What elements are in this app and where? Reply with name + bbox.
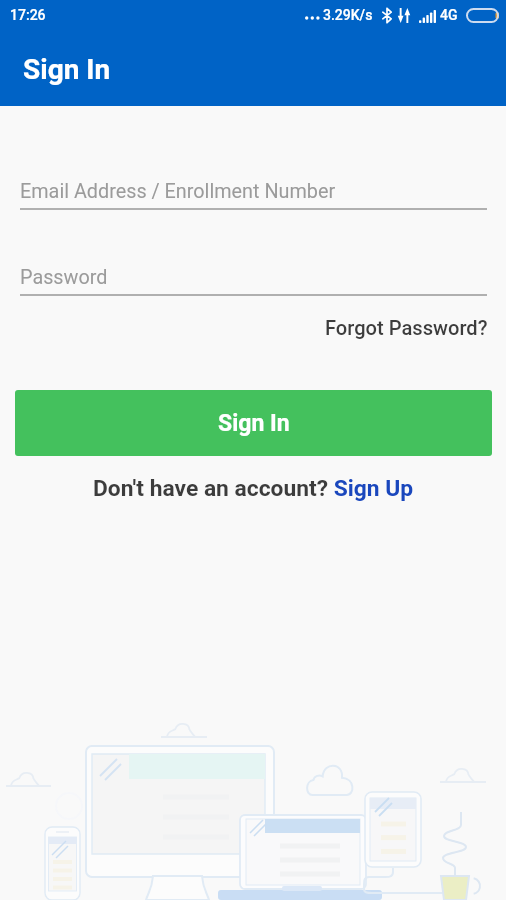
staticText: 17:26 — [10, 7, 46, 23]
staticText: Sign In — [23, 53, 111, 86]
button[interactable]: Email Address / Enrollment Number field — [20, 172, 487, 210]
staticText: Forgot Password? — [325, 316, 488, 340]
staticText: Don't have an account? Sign Up — [93, 475, 414, 502]
staticText: Email Address / Enrollment Number — [20, 180, 336, 203]
staticText: Sign In — [218, 410, 290, 437]
staticText: Password — [20, 266, 108, 289]
staticText: 3.29K/s — [323, 7, 373, 23]
button[interactable]: Don't have an account? Sign Up — [79, 467, 428, 510]
button[interactable]: Sign In — [15, 390, 492, 456]
staticText: 4G — [440, 7, 458, 23]
button[interactable]: Password field — [20, 258, 487, 296]
button[interactable]: Forgot Password? — [325, 316, 488, 340]
